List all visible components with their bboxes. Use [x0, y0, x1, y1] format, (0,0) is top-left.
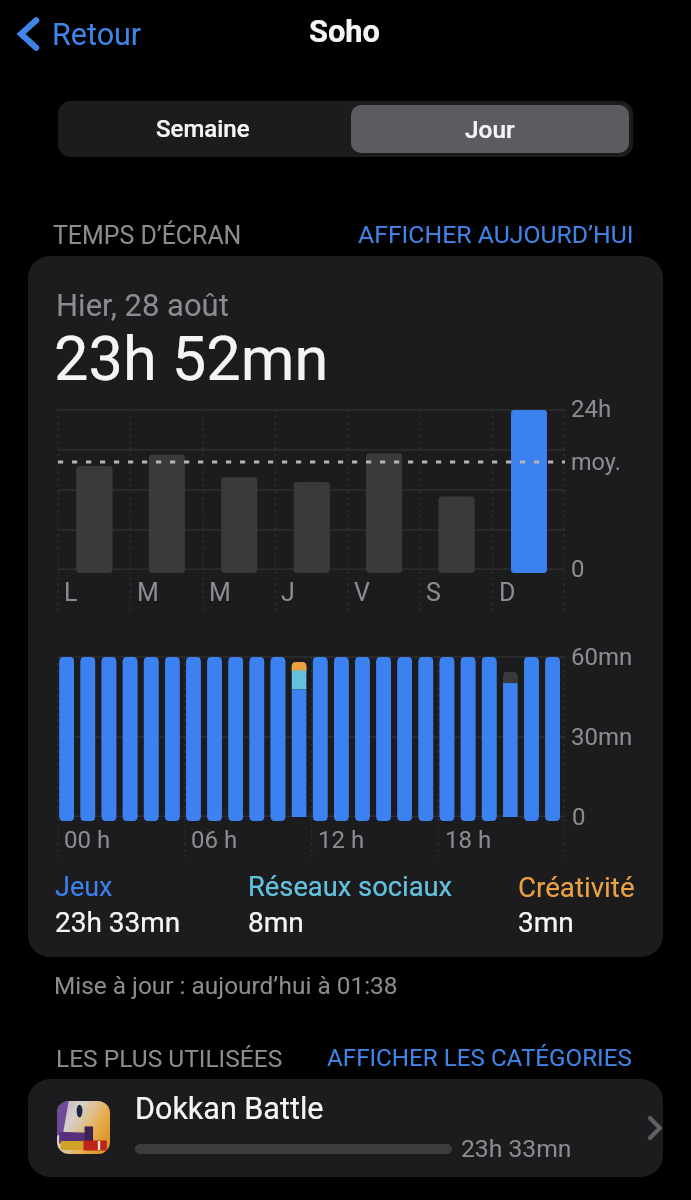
- staticText: 60mn: [571, 643, 633, 671]
- staticText: Réseaux sociaux: [248, 871, 453, 903]
- staticText: S: [426, 578, 441, 607]
- button[interactable]: AFFICHER LES CATÉGORIES: [321, 1038, 626, 1066]
- staticText: TEMPS D’ÉCRAN: [53, 221, 242, 250]
- staticText: AFFICHER LES CATÉGORIES: [327, 1044, 632, 1072]
- staticText: Jour: [465, 115, 515, 144]
- staticText: Jeux: [55, 871, 113, 903]
- staticText: 18 h: [445, 826, 492, 854]
- staticText: Retour: [52, 17, 142, 53]
- staticText: M: [137, 578, 159, 607]
- button[interactable]: Retour: [6, 4, 158, 62]
- staticText: 3mn: [518, 906, 574, 939]
- staticText: 06 h: [191, 826, 238, 854]
- button[interactable]: Semaine: [58, 101, 348, 157]
- staticText: 12 h: [318, 826, 365, 854]
- staticText: D: [499, 578, 516, 607]
- staticText: J: [281, 578, 295, 607]
- staticText: moy.: [571, 448, 621, 476]
- staticText: 0: [572, 803, 586, 831]
- staticText: V: [354, 578, 370, 607]
- staticText: 23h 52mn: [54, 323, 329, 395]
- staticText: 23h 33mn: [461, 1134, 572, 1163]
- staticText: Hier, 28 août: [56, 287, 229, 323]
- staticText: M: [209, 578, 231, 607]
- staticText: 24h: [571, 395, 612, 423]
- staticText: 23h 33mn: [55, 906, 181, 939]
- other: Voir les détails: [647, 1116, 662, 1140]
- staticText: 00 h: [64, 826, 111, 854]
- button[interactable]: Dokkan Battle: [28, 1079, 663, 1177]
- staticText: Semaine: [156, 115, 250, 143]
- button[interactable]: Jour: [351, 105, 629, 153]
- staticText: Soho: [309, 13, 380, 49]
- button[interactable]: TEMPS D’ÉCRAN: [46, 215, 235, 244]
- staticText: Créativité: [518, 871, 635, 903]
- button[interactable]: AFFICHER AUJOURD’HUI: [352, 215, 628, 244]
- staticText: AFFICHER AUJOURD’HUI: [358, 220, 634, 249]
- staticText: Mise à jour : aujourd’hui à 01:38: [54, 971, 398, 1000]
- staticText: Dokkan Battle: [135, 1091, 324, 1127]
- staticText: LES PLUS UTILISÉES: [56, 1044, 283, 1073]
- staticText: 30mn: [571, 723, 633, 751]
- staticText: 8mn: [248, 906, 304, 939]
- staticText: L: [64, 578, 78, 607]
- button[interactable]: LES PLUS UTILISÉES: [46, 1038, 273, 1067]
- staticText: 0: [571, 555, 585, 583]
